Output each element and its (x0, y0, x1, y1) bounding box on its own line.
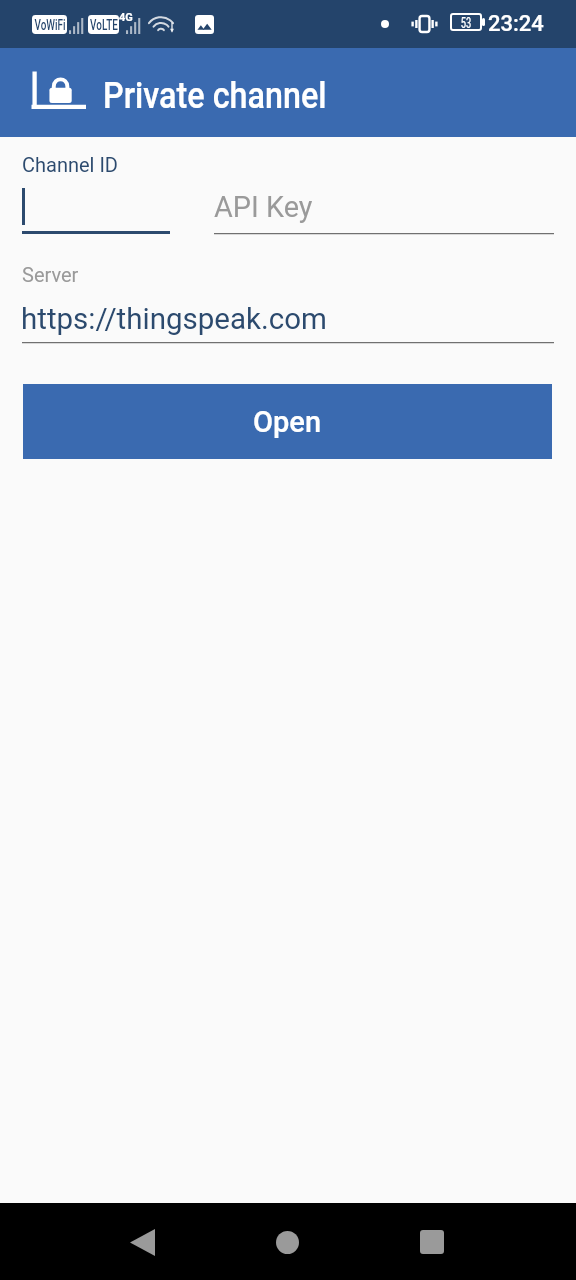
staticText: VoLTE (84, 16, 124, 34)
staticText: Server (22, 263, 79, 286)
staticText: 4G (119, 11, 133, 24)
button[interactable]: Back (94, 1204, 190, 1280)
button[interactable]: Home (239, 1204, 335, 1280)
other: Private channel chart (31, 71, 86, 109)
staticText: Private channel (103, 75, 327, 117)
staticText: VoWiFi (30, 16, 70, 34)
button[interactable] (22, 188, 170, 234)
button[interactable]: Recent apps (384, 1204, 480, 1280)
staticText: https://thingspeak.com (21, 302, 327, 337)
button[interactable]: Open (23, 384, 552, 459)
staticText: API Key (214, 190, 313, 224)
staticText: Channel ID (22, 153, 118, 176)
staticText: 23:24 (488, 11, 544, 37)
button[interactable] (214, 189, 554, 235)
button[interactable] (22, 297, 554, 344)
staticText: Open (253, 405, 322, 439)
staticText: 53 (454, 14, 478, 30)
